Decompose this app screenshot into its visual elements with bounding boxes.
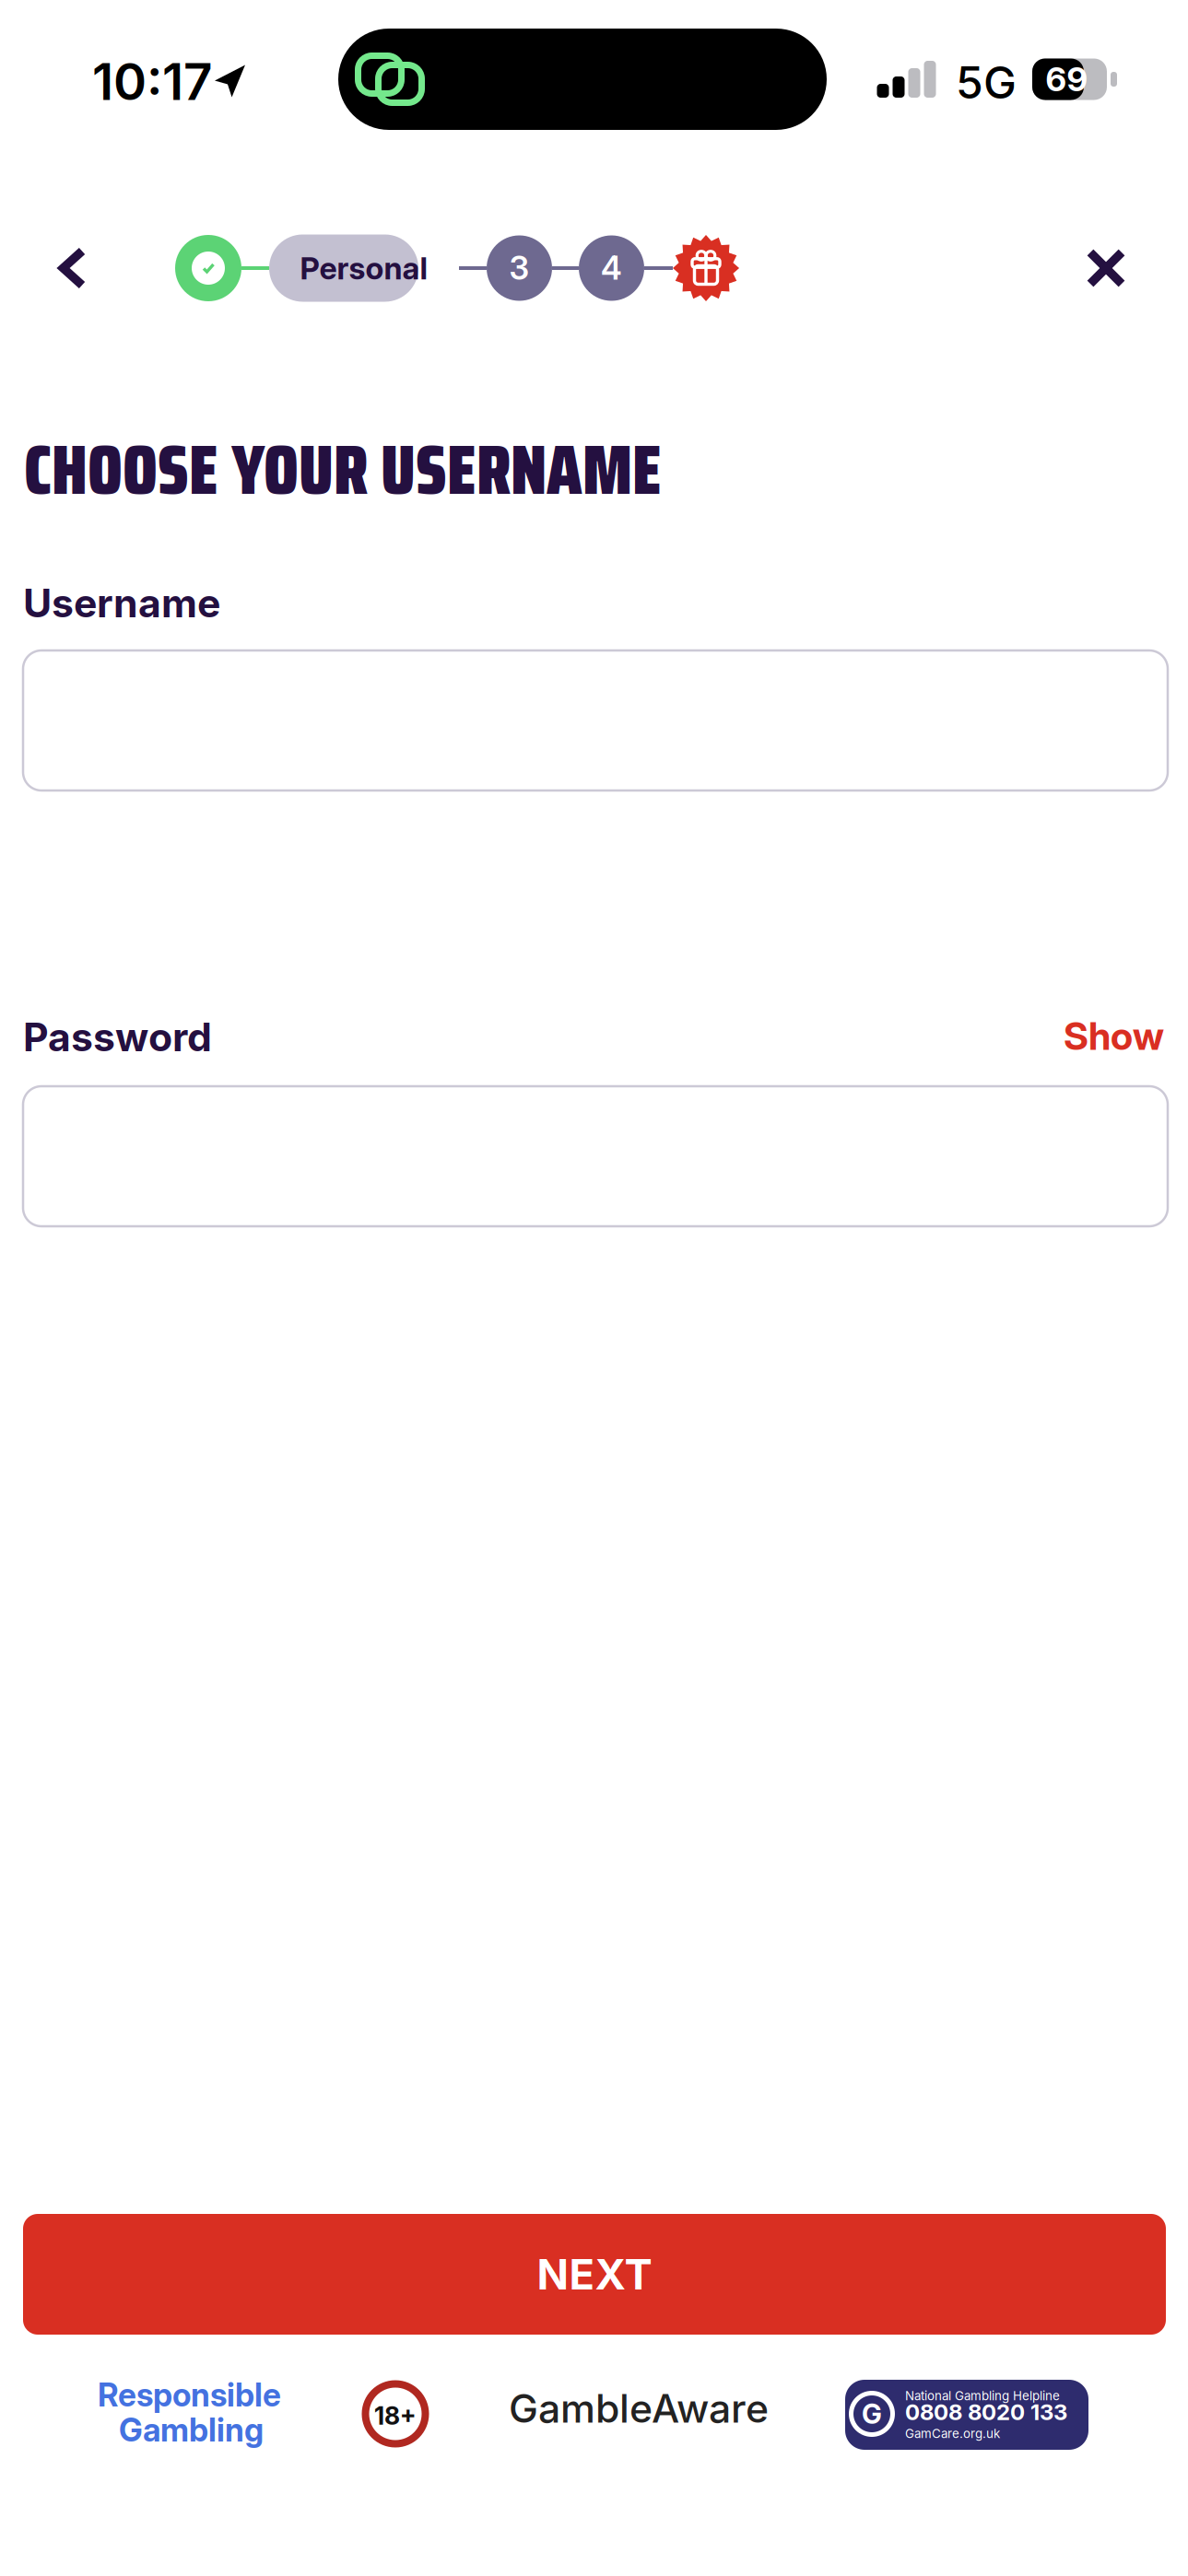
staticText: GamCare.org.uk — [905, 2426, 1000, 2441]
button[interactable]: Show — [1064, 1013, 1164, 1060]
staticText: Gambling — [119, 2411, 264, 2449]
staticText: 3 — [509, 249, 529, 287]
staticText: CHOOSE YOUR USERNAME — [24, 416, 662, 524]
staticText: 69 — [1046, 59, 1088, 99]
staticText: Personal — [300, 249, 428, 287]
staticText: Username — [23, 579, 220, 627]
staticText: NEXT — [537, 2249, 652, 2300]
button[interactable]: Back — [29, 224, 117, 312]
staticText: G — [862, 2398, 882, 2430]
button[interactable]: NEXT — [23, 2214, 1166, 2335]
staticText: 0808 8020 133 — [905, 2399, 1067, 2425]
staticText: Password — [23, 1013, 212, 1061]
staticText: National Gambling Helpline — [905, 2388, 1060, 2403]
staticText: 10:17 — [92, 51, 212, 112]
staticText: 18+ — [374, 2401, 417, 2431]
staticText: 4 — [601, 249, 622, 287]
staticText: Show — [1064, 1013, 1164, 1059]
staticText: 5G — [956, 56, 1017, 109]
staticText: Responsible — [98, 2376, 281, 2414]
staticText: GambleAware — [509, 2385, 769, 2432]
button[interactable]: Close — [1062, 224, 1150, 312]
